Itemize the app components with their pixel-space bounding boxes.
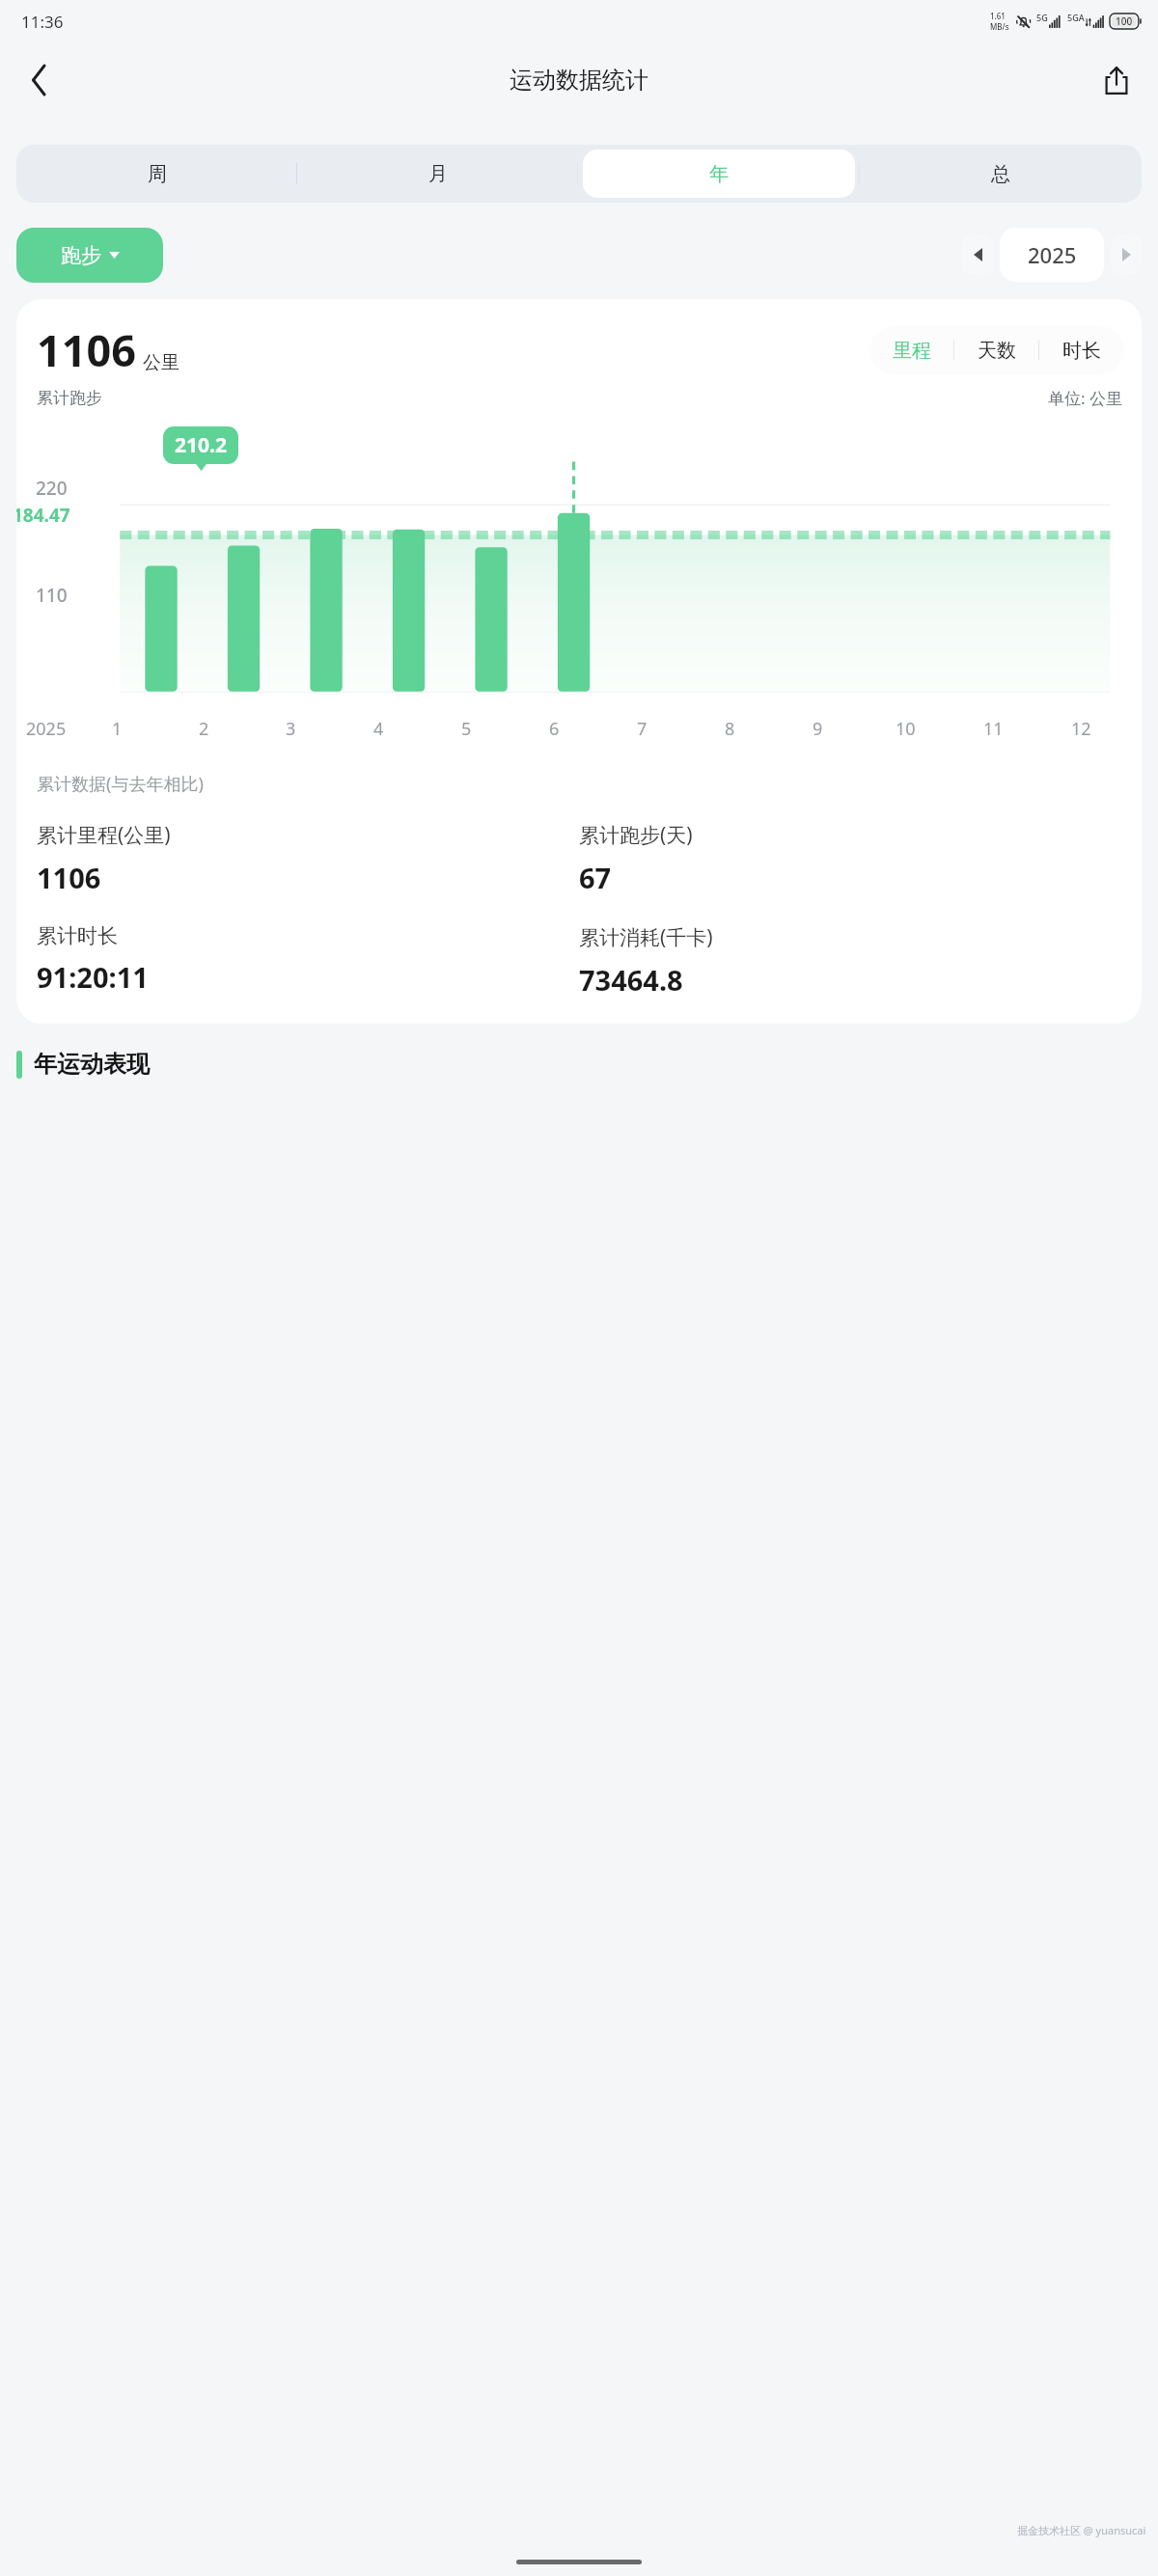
staticText: 2025 <box>26 717 67 741</box>
staticText: 210.2 <box>175 431 227 459</box>
staticText: 1106 <box>37 859 101 896</box>
button[interactable]: 里程 <box>869 326 954 374</box>
staticText: 累计跑步(天) <box>579 821 693 849</box>
staticText: MB/s <box>990 21 1009 32</box>
staticText: 公里 <box>143 351 179 374</box>
staticText: 11:36 <box>21 11 64 33</box>
button[interactable]: 里程 <box>869 326 1124 374</box>
staticText: 5GA <box>1067 12 1085 23</box>
staticText: 4 <box>373 717 384 741</box>
staticText: 年运动表现 <box>34 1050 150 1079</box>
staticText: 5 <box>461 717 472 741</box>
staticText: 累计里程(公里) <box>37 821 171 849</box>
button[interactable]: 跑步 <box>16 228 163 283</box>
staticText: 100 <box>1116 14 1133 28</box>
staticText: 73464.8 <box>579 961 683 999</box>
staticText: 年 <box>709 162 729 186</box>
staticText: 累计时长 <box>37 923 118 948</box>
staticText: 2 <box>199 717 209 741</box>
staticText: 掘金技术社区 @ yuansucai <box>1017 2523 1146 2537</box>
staticText: 里程 <box>893 339 931 363</box>
staticText: 累计数据(与去年相比) <box>37 772 204 796</box>
staticText: 时长 <box>1062 339 1101 363</box>
button[interactable]: 天数 <box>954 326 1039 374</box>
staticText: 11 <box>983 717 1004 741</box>
button[interactable]: 时长 <box>1039 326 1124 374</box>
staticText: 总 <box>991 162 1010 186</box>
staticText: 5G <box>1036 12 1048 23</box>
staticText: 运动数据统计 <box>510 66 648 95</box>
staticText: 9 <box>813 717 823 741</box>
staticText: 10 <box>896 717 916 741</box>
staticText: 2025 <box>1028 240 1077 269</box>
staticText: 6 <box>549 717 560 741</box>
button[interactable]: 月 <box>297 145 578 203</box>
staticText: 累计消耗(千卡) <box>579 923 713 951</box>
staticText: 8 <box>725 717 735 741</box>
button[interactable]: 年 <box>578 145 860 203</box>
staticText: 220 <box>36 476 68 501</box>
staticText: 1106 <box>37 320 136 379</box>
staticText: 累计跑步 <box>37 388 102 408</box>
staticText: 3 <box>286 717 296 741</box>
staticText: 7 <box>637 717 648 741</box>
button[interactable]: Next year <box>1111 234 1142 275</box>
button[interactable]: 周 <box>16 145 297 203</box>
staticText: 周 <box>148 162 167 186</box>
staticText: 110 <box>36 583 68 608</box>
staticText: 67 <box>579 859 612 896</box>
staticText: 1.61 <box>990 11 1006 21</box>
staticText: 1 <box>112 717 123 741</box>
staticText: 184.47 <box>16 503 70 528</box>
button[interactable]: Back <box>14 54 66 106</box>
staticText: 91:20:11 <box>37 958 149 996</box>
button[interactable]: Share <box>1090 54 1143 106</box>
button[interactable]: 2025 <box>1000 228 1104 282</box>
button[interactable]: Previous year <box>962 234 993 275</box>
staticText: 月 <box>428 162 448 186</box>
staticText: 天数 <box>978 339 1016 363</box>
staticText: 12 <box>1071 717 1091 741</box>
staticText: 单位: 公里 <box>1048 387 1122 409</box>
staticText: 跑步 <box>61 243 101 268</box>
button[interactable]: 总 <box>860 145 1142 203</box>
